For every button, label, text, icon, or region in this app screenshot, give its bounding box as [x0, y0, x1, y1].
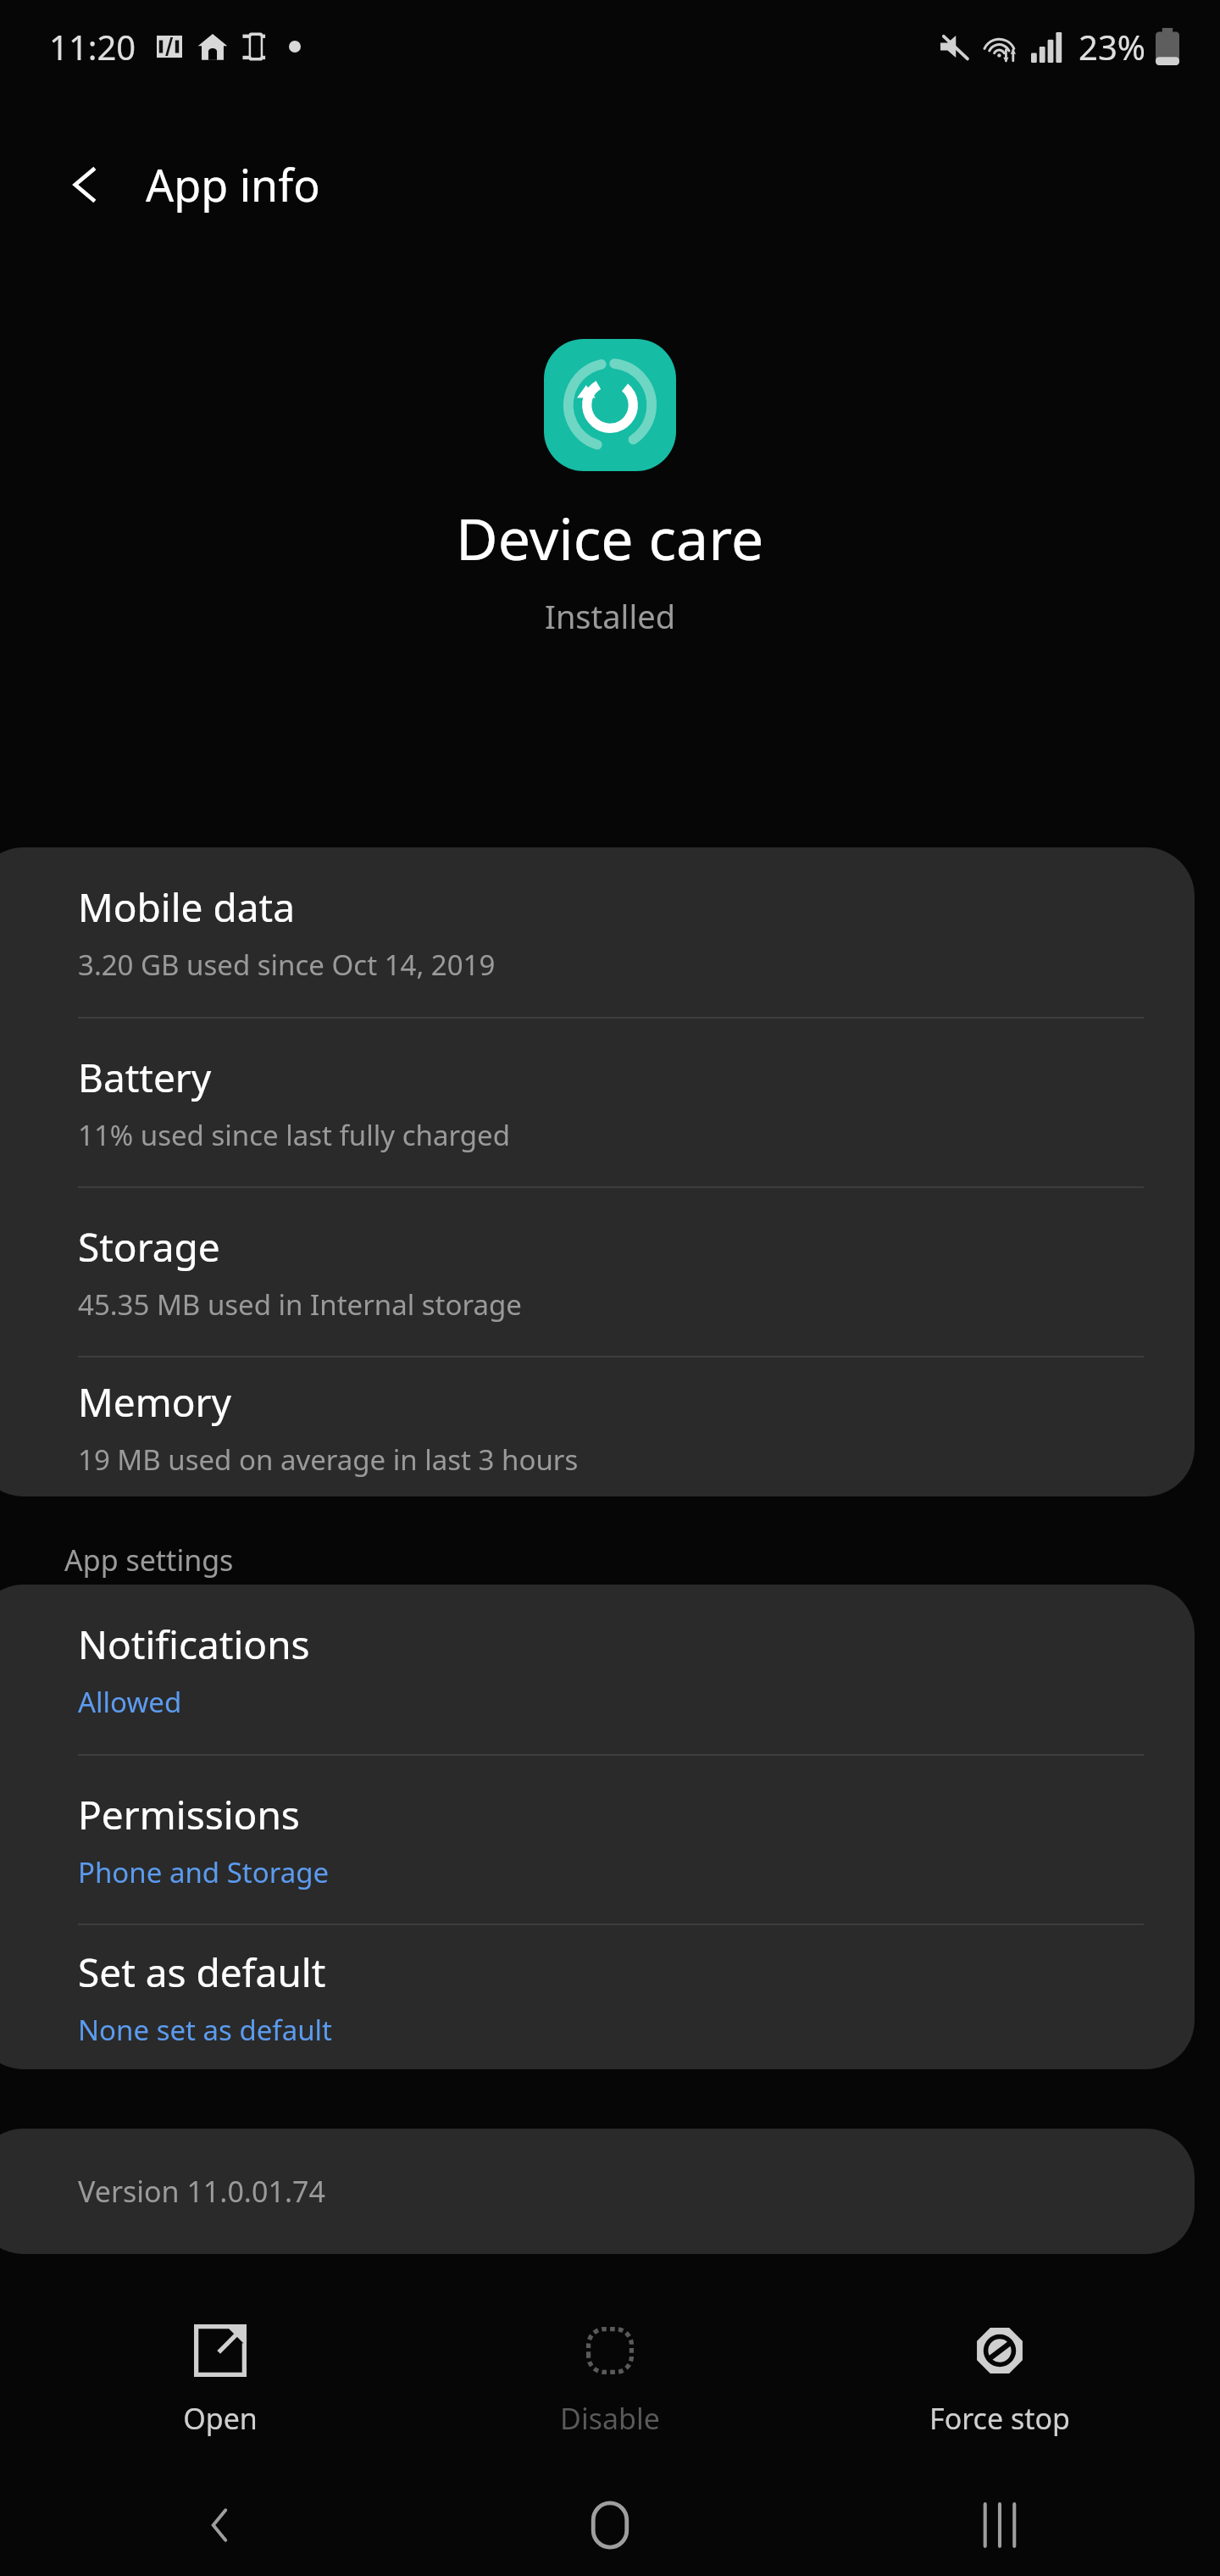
staticText: Storage: [78, 1220, 220, 1274]
staticText: Allowed: [78, 1683, 182, 1721]
staticText: App settings: [64, 1541, 234, 1579]
staticText: Disable: [560, 2399, 660, 2438]
staticText: Usage: [64, 839, 150, 878]
staticText: 11:20: [49, 24, 136, 69]
staticText: Mobile data: [78, 880, 295, 934]
staticText: App info: [146, 154, 320, 214]
staticText: Set as default: [78, 1946, 326, 1999]
button[interactable]: Battery: [0, 1017, 1195, 1186]
button[interactable]: Set as default: [0, 1924, 1195, 2069]
staticText: Memory: [78, 1375, 231, 1429]
staticText: 23%: [1079, 24, 1145, 69]
staticText: Force stop: [929, 2399, 1070, 2438]
staticText: Phone and Storage: [78, 1853, 330, 1891]
button[interactable]: Memory: [0, 1356, 1195, 1496]
staticText: Open: [183, 2399, 258, 2438]
staticText: 19 MB used on average in last 3 hours: [78, 1441, 579, 1479]
staticText: 45.35 MB used in Internal storage: [78, 1285, 522, 1324]
button[interactable]: Permissions: [0, 1754, 1195, 1924]
staticText: Notifications: [78, 1618, 310, 1671]
staticText: Installed: [545, 594, 676, 638]
staticText: Permissions: [78, 1788, 300, 1841]
button[interactable]: Back: [51, 2474, 390, 2576]
button[interactable]: Back: [42, 142, 127, 227]
staticText: 11% used since last fully charged: [78, 1116, 510, 1154]
button[interactable]: Notifications: [0, 1585, 1195, 1754]
button[interactable]: Disable: [441, 2305, 779, 2457]
staticText: 3.20 GB used since Oct 14, 2019: [78, 946, 496, 984]
button[interactable]: Force stop: [830, 2305, 1169, 2457]
staticText: Device care: [456, 498, 764, 577]
staticText: None set as default: [78, 2011, 333, 2049]
staticText: Battery: [78, 1051, 212, 1104]
button[interactable]: Version 11.0.01.74: [0, 2129, 1195, 2254]
button[interactable]: Storage: [0, 1186, 1195, 1356]
button[interactable]: Open: [51, 2305, 390, 2457]
button[interactable]: Home: [441, 2474, 779, 2576]
button[interactable]: Mobile data: [0, 847, 1195, 1017]
staticText: Version 11.0.01.74: [78, 2172, 325, 2211]
button[interactable]: Recents: [830, 2474, 1169, 2576]
